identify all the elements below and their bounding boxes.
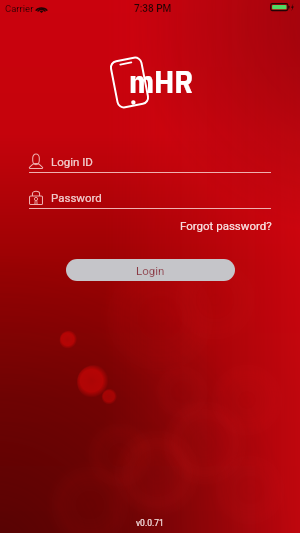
staticText: Login ID [51,155,93,168]
staticText: Carrier [5,3,34,14]
staticText: Login [136,264,165,277]
staticText: Password [51,191,102,204]
button[interactable]: Forgot password? [173,216,279,235]
staticText: Forgot password? [180,219,272,232]
staticText: v0.0.71 [136,518,164,528]
button[interactable]: Login [66,259,235,281]
button[interactable]: Password [22,189,278,209]
staticText: 7:38 PM [134,3,172,15]
button[interactable]: Login ID [22,153,278,173]
staticText: mHR [129,61,194,101]
